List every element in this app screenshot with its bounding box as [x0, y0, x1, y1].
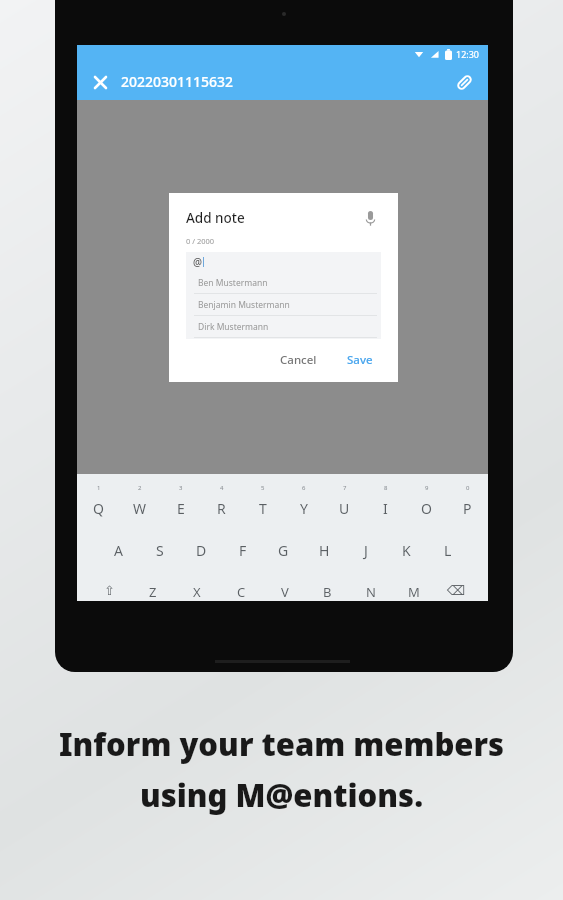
staticText: 8 — [384, 484, 388, 492]
button[interactable]: 7 — [324, 484, 365, 528]
button[interactable]: 0 — [447, 484, 488, 528]
staticText: 0 — [466, 484, 470, 492]
button[interactable]: C — [219, 583, 263, 601]
staticText: Z — [149, 583, 157, 601]
staticText: B — [323, 583, 332, 601]
staticText: 0 / 2000 — [186, 236, 215, 246]
button[interactable]: Attach file — [450, 68, 478, 96]
staticText: I — [383, 499, 388, 518]
button[interactable]: 6 — [283, 484, 324, 528]
button[interactable]: 1 — [77, 484, 119, 528]
button[interactable]: Ben Mustermann — [186, 272, 381, 294]
button[interactable]: N — [349, 583, 392, 601]
staticText: N — [366, 583, 376, 601]
staticText: 5 — [261, 484, 265, 492]
button[interactable]: Voice input — [359, 207, 381, 229]
staticText: A — [114, 541, 123, 560]
button[interactable]: 5 — [242, 484, 283, 528]
staticText: 9 — [425, 484, 429, 492]
staticText: E — [177, 499, 185, 518]
staticText: X — [193, 583, 201, 601]
button[interactable]: 4 — [201, 484, 242, 528]
staticText: 7 — [343, 484, 347, 492]
staticText: Inform your team members — [0, 723, 563, 765]
staticText: Cancel — [280, 352, 317, 368]
staticText: Y — [300, 499, 308, 518]
staticText: M — [408, 583, 420, 601]
staticText: H — [319, 541, 330, 560]
staticText: L — [444, 541, 452, 560]
button[interactable]: H — [304, 541, 345, 573]
staticText: U — [339, 499, 350, 518]
staticText: Ben Mustermann — [198, 277, 268, 289]
button[interactable]: Z — [131, 583, 175, 601]
button[interactable]: ⌫ — [435, 583, 478, 601]
button[interactable]: Save — [339, 348, 381, 372]
staticText: S — [156, 541, 164, 560]
staticText: O — [421, 499, 432, 518]
staticText: 12:30 — [456, 48, 480, 60]
staticText: Dirk Mustermann — [198, 321, 269, 333]
staticText: W — [133, 499, 147, 518]
staticText: @ — [193, 255, 202, 269]
button[interactable]: G — [263, 541, 304, 573]
button[interactable]: Benjamin Mustermann — [186, 294, 381, 316]
button[interactable]: 3 — [160, 484, 201, 528]
staticText: 20220301115632 — [121, 72, 234, 91]
staticText: K — [402, 541, 411, 560]
button[interactable]: B — [306, 583, 349, 601]
staticText: 3 — [179, 484, 183, 492]
staticText: P — [463, 499, 472, 518]
staticText: J — [364, 541, 368, 560]
staticText: ⌫ — [447, 583, 466, 598]
button[interactable]: 8 — [365, 484, 406, 528]
button[interactable]: Close — [87, 69, 113, 95]
staticText: 1 — [97, 484, 101, 492]
button[interactable]: 9 — [406, 484, 447, 528]
button[interactable]: K — [386, 541, 427, 573]
staticText: 6 — [302, 484, 306, 492]
staticText: Save — [347, 352, 373, 368]
staticText: D — [196, 541, 207, 560]
staticText: T — [259, 499, 267, 518]
staticText: G — [278, 541, 289, 560]
staticText: Benjamin Mustermann — [198, 299, 290, 311]
staticText: ⇧ — [104, 583, 115, 598]
button[interactable]: Dirk Mustermann — [186, 316, 381, 338]
button[interactable]: J — [345, 541, 386, 573]
button[interactable]: F — [222, 541, 263, 573]
button[interactable]: Cancel — [272, 348, 325, 372]
button[interactable]: V — [263, 583, 306, 601]
staticText: 2 — [138, 484, 142, 492]
button[interactable]: M — [392, 583, 435, 601]
staticText: 4 — [220, 484, 224, 492]
button[interactable]: S — [139, 541, 181, 573]
staticText: V — [281, 583, 289, 601]
staticText: C — [237, 583, 246, 601]
button[interactable]: ⇧ — [87, 583, 131, 601]
button[interactable]: D — [181, 541, 222, 573]
button[interactable]: 2 — [119, 484, 160, 528]
staticText: using M@entions. — [0, 774, 563, 816]
staticText: F — [239, 541, 247, 560]
staticText: Add note — [186, 209, 245, 227]
button[interactable]: X — [175, 583, 219, 601]
staticText: R — [217, 499, 226, 518]
staticText: Q — [93, 499, 104, 518]
button[interactable]: L — [427, 541, 468, 573]
button[interactable]: A — [97, 541, 139, 573]
